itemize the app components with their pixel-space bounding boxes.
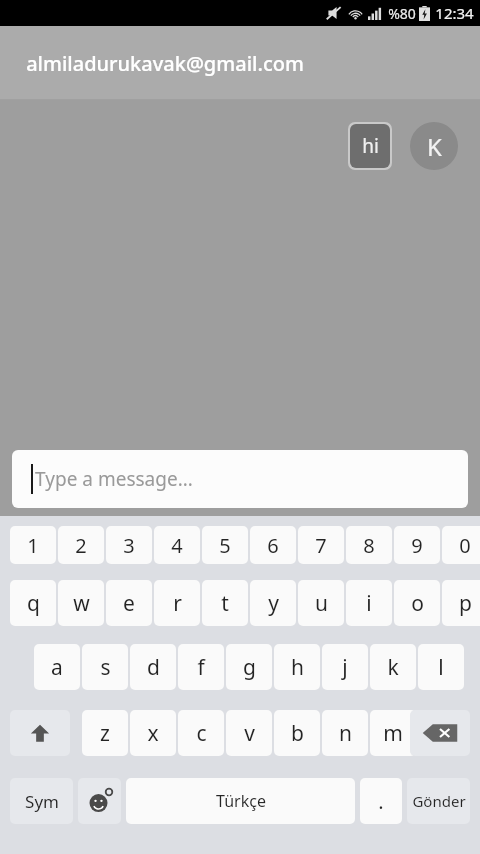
staticText: K [427,130,442,163]
staticText: q [27,589,40,618]
staticText: Type a message... [35,466,193,492]
staticText: Türkçe [216,790,266,812]
button[interactable]: Sym [10,778,73,824]
button[interactable]: 0 [442,526,480,564]
button[interactable]: 9 [394,526,440,564]
button[interactable]: w [58,580,104,626]
button[interactable]: f [178,644,224,690]
button[interactable]: Emoji [78,778,121,824]
staticText: 4 [171,532,183,559]
staticText: %80 [388,4,416,23]
staticText: a [51,653,63,682]
button[interactable]: 2 [58,526,104,564]
staticText: z [100,719,110,748]
button[interactable]: t [202,580,248,626]
staticText: v [244,719,255,748]
staticText: w [73,589,90,618]
staticText: almiladurukavak@gmail.com [26,50,304,77]
button[interactable]: r [154,580,200,626]
staticText: 5 [219,532,231,559]
staticText: 9 [411,532,423,559]
button[interactable]: u [298,580,344,626]
button[interactable]: h [274,644,320,690]
staticText: Sym [25,790,59,813]
staticText: n [339,719,352,748]
button[interactable]: k [370,644,416,690]
staticText: t [221,589,229,618]
staticText: u [315,589,328,618]
staticText: 6 [267,532,279,559]
staticText: hi [362,133,379,159]
button[interactable]: q [10,580,56,626]
button[interactable]: 4 [154,526,200,564]
button[interactable]: Türkçe [126,778,355,824]
button[interactable]: p [442,580,480,626]
button[interactable]: 5 [202,526,248,564]
button[interactable]: hi [350,124,390,168]
button[interactable]: . [360,778,402,824]
staticText: . [378,788,384,815]
staticText: 12:34 [435,3,474,23]
staticText: h [291,653,304,682]
button[interactable]: b [274,710,320,756]
button[interactable]: 7 [298,526,344,564]
button[interactable]: d [130,644,176,690]
button[interactable]: n [322,710,368,756]
staticText: 2 [75,532,87,559]
staticText: o [411,589,424,618]
button[interactable]: o [394,580,440,626]
button[interactable]: g [226,644,272,690]
staticText: 0 [459,532,471,559]
staticText: i [366,589,372,618]
staticText: m [383,719,403,748]
button[interactable]: 3 [106,526,152,564]
staticText: r [173,589,182,618]
button[interactable]: l [418,644,464,690]
button[interactable]: 8 [346,526,392,564]
staticText: 3 [123,532,135,559]
button[interactable]: K [410,122,458,170]
staticText: s [100,653,111,682]
staticText: e [123,589,135,618]
staticText: p [459,589,472,618]
staticText: x [147,719,159,748]
button[interactable]: a [34,644,80,690]
staticText: 7 [315,532,327,559]
staticText: b [291,719,304,748]
button[interactable]: y [250,580,296,626]
button[interactable]: Type a message... [12,450,468,508]
button[interactable]: v [226,710,272,756]
staticText: y [268,589,279,618]
staticText: k [387,653,399,682]
button[interactable]: c [178,710,224,756]
staticText: 1 [27,532,39,559]
button[interactable]: m [370,710,416,756]
button[interactable]: z [82,710,128,756]
button[interactable]: x [130,710,176,756]
staticText: g [243,653,256,682]
button[interactable]: Gönder [407,778,470,824]
staticText: j [342,653,348,682]
staticText: c [196,719,207,748]
button[interactable]: Backspace [410,710,470,756]
staticText: l [438,653,444,682]
button[interactable]: s [82,644,128,690]
button[interactable]: e [106,580,152,626]
button[interactable]: j [322,644,368,690]
staticText: f [197,653,205,682]
staticText: Gönder [412,791,466,811]
button[interactable]: i [346,580,392,626]
staticText: d [147,653,160,682]
button[interactable]: 1 [10,526,56,564]
button[interactable]: 6 [250,526,296,564]
staticText: 8 [363,532,375,559]
button[interactable]: Shift [10,710,70,756]
